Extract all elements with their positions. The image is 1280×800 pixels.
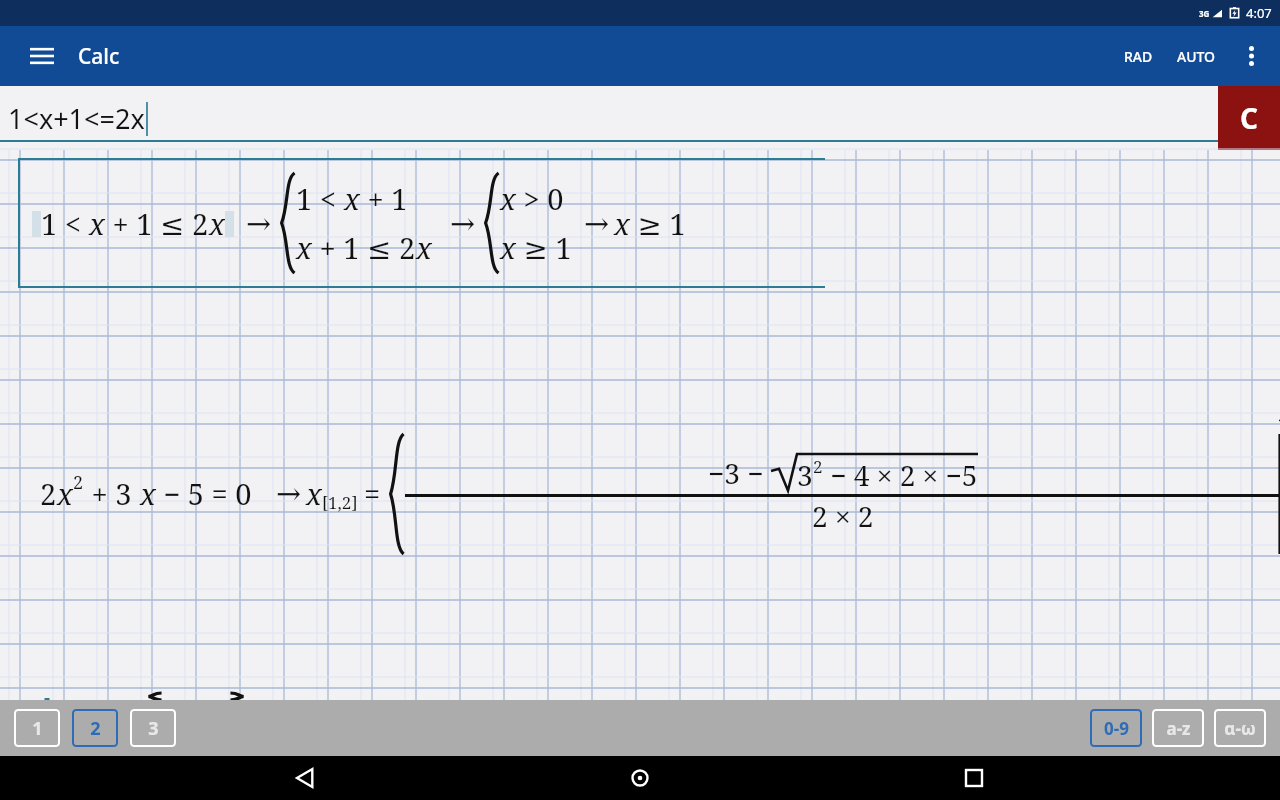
staticText: RAD xyxy=(1124,47,1153,66)
staticText: 2 xyxy=(813,455,823,478)
staticText: 4:07 xyxy=(1246,4,1272,22)
staticText: −3 − xyxy=(708,454,771,492)
staticText: x xyxy=(209,204,225,243)
staticText: ≥ 1 xyxy=(516,228,572,267)
staticText: + 1 ≤ 2 xyxy=(105,204,209,243)
staticText: 3 xyxy=(148,716,159,741)
staticText: > 0 xyxy=(516,179,564,218)
staticText: → xyxy=(584,206,610,241)
staticText: = xyxy=(364,474,381,513)
staticText: − 5 = 0 xyxy=(156,474,252,513)
staticText: x xyxy=(296,228,312,267)
staticText: x xyxy=(344,179,360,218)
staticText: x xyxy=(500,228,516,267)
staticText: 2 xyxy=(90,716,101,741)
staticText: 1 < xyxy=(41,204,89,243)
staticText: − 4 × 2 × −5 xyxy=(823,456,978,494)
staticText: 5 xyxy=(184,693,199,700)
button[interactable]: 0-9 xyxy=(1090,709,1142,747)
staticText: x xyxy=(89,204,105,243)
button[interactable]: Back xyxy=(278,756,334,800)
staticText: → xyxy=(276,476,302,511)
button[interactable]: RAD xyxy=(1112,37,1165,76)
staticText: α-ω xyxy=(1224,717,1256,740)
button[interactable]: More options xyxy=(1228,33,1274,79)
staticText: 3 xyxy=(797,456,813,494)
staticText: + 1 xyxy=(360,179,408,218)
staticText: x xyxy=(416,228,432,267)
staticText: x xyxy=(500,179,516,218)
staticText: + 1 ≤ 2 xyxy=(312,228,416,267)
staticText: 3G xyxy=(1199,8,1210,19)
button[interactable]: 1 < xyxy=(18,158,825,288)
staticText: 1<x+1<=2x xyxy=(8,100,145,137)
staticText: + 3 xyxy=(84,474,140,513)
staticText: 0-9 xyxy=(1104,717,1129,740)
staticText: AUTO xyxy=(1177,47,1216,66)
button[interactable]: α-ω xyxy=(1214,709,1266,747)
button[interactable]: Recent apps xyxy=(946,756,1002,800)
staticText: ≥ 1 xyxy=(630,204,686,243)
button[interactable]: AUTO xyxy=(1165,37,1228,76)
staticText: C xyxy=(1240,99,1258,137)
staticText: 1 xyxy=(32,716,43,741)
staticText: x xyxy=(306,474,322,513)
staticText: x xyxy=(614,204,630,243)
staticText: 2 xyxy=(40,474,57,513)
button[interactable]: 2 xyxy=(40,300,1280,687)
staticText: x xyxy=(60,693,76,700)
button[interactable]: Home xyxy=(612,756,668,800)
staticText: x xyxy=(140,474,156,513)
staticText: 2 × 2 xyxy=(812,497,874,535)
button[interactable]: a-z xyxy=(1152,709,1204,747)
staticText: a-z xyxy=(1166,717,1191,740)
button[interactable]: C xyxy=(1218,86,1280,150)
staticText: 1 < xyxy=(296,179,344,218)
button[interactable]: 3 xyxy=(130,709,176,747)
staticText: 2 xyxy=(73,470,84,495)
staticText: x xyxy=(57,474,73,513)
button[interactable]: Open navigation menu xyxy=(18,32,66,80)
staticText: → xyxy=(450,206,476,241)
button[interactable]: 2 xyxy=(72,709,118,747)
staticText: → xyxy=(246,206,272,241)
staticText: [1,2] xyxy=(322,491,358,514)
staticText: → xyxy=(28,693,54,700)
button[interactable]: 1 xyxy=(14,709,60,747)
button[interactable]: → xyxy=(28,693,247,700)
staticText: Calc xyxy=(78,42,120,71)
